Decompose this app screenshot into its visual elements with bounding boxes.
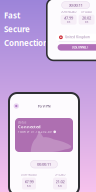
staticText: 21.02 [55,179,64,184]
staticText: Connected [18,124,41,129]
staticText: YOUR IP 31.14.252.40 [18,130,52,134]
staticText: KB [67,20,71,24]
staticText: DOWNLOAD [21,173,37,176]
staticText: 47.99 [64,15,73,20]
staticText: 00:00:11 [37,162,51,167]
staticText: DOWNLOAD [61,10,77,14]
staticText: KB [58,184,62,188]
staticText: 20.02 [82,15,91,20]
staticText: UPLOAD [81,10,92,14]
button[interactable]: United Kingdom [56,34,96,42]
staticText: KB [27,184,31,188]
staticText: UPLOAD [54,173,65,176]
staticText: United Kingdom [65,35,90,39]
staticText: 00:00:11 [69,2,83,8]
staticText: 47.99 [24,179,33,184]
staticText: Secure [4,24,30,34]
staticText: status [18,121,26,124]
staticText: Connection [4,38,48,48]
staticText: KB [85,20,89,24]
button[interactable]: DISCONNECT [58,44,96,51]
staticText: Yo VPN [37,103,50,109]
staticText: DISCONNECT [72,46,89,49]
staticText: Fast [4,10,20,21]
button[interactable]: Yo VPN logo [13,102,20,110]
